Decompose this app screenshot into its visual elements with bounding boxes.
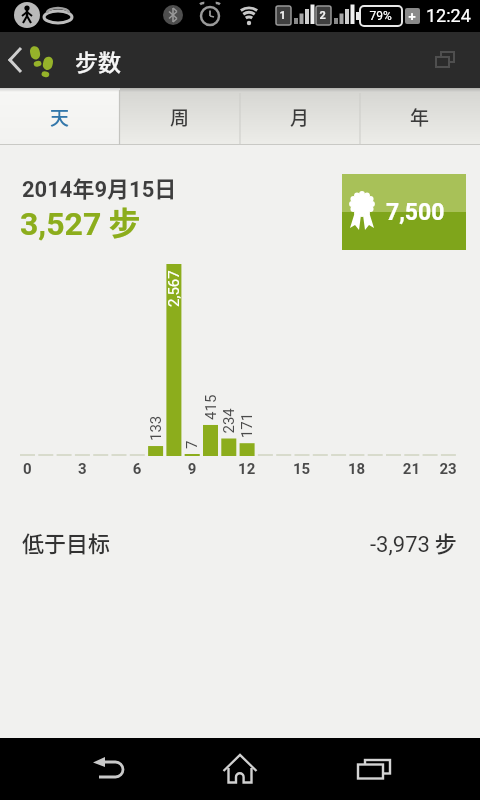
staticText: 2014年9月15日 <box>22 171 177 203</box>
staticText: -3,973 步 <box>370 526 457 558</box>
button[interactable] <box>180 738 300 800</box>
staticText: 步数 <box>75 44 121 77</box>
staticText: 3,527 步 <box>20 198 141 244</box>
staticText: 月 <box>290 103 310 131</box>
button[interactable] <box>48 738 168 800</box>
staticText: 7,500 <box>386 199 445 226</box>
button[interactable]: 年 <box>360 88 480 145</box>
button[interactable]: 天 <box>0 88 120 145</box>
staticText: 低于目标 <box>22 526 111 558</box>
button[interactable] <box>314 738 434 800</box>
staticText: 天 <box>50 103 70 131</box>
button[interactable]: 周 <box>120 88 240 145</box>
button[interactable]: 月 <box>240 88 360 145</box>
staticText: 年 <box>410 103 430 131</box>
staticText: 周 <box>170 103 190 131</box>
button[interactable]: 步数 <box>0 32 121 88</box>
button[interactable]: 7,500 <box>342 174 466 250</box>
